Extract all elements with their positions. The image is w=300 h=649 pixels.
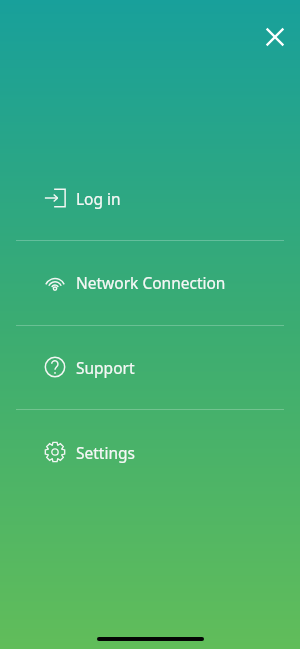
staticText: Log in [76, 188, 121, 209]
button[interactable]: Close [255, 17, 295, 57]
button[interactable]: Log in [0, 175, 300, 221]
staticText: Settings [76, 442, 135, 463]
button[interactable]: Support [0, 344, 300, 390]
staticText: Network Connection [76, 272, 226, 293]
button[interactable]: Network Connection [0, 259, 300, 305]
button[interactable]: Settings [0, 429, 300, 475]
staticText: Support [76, 357, 135, 378]
